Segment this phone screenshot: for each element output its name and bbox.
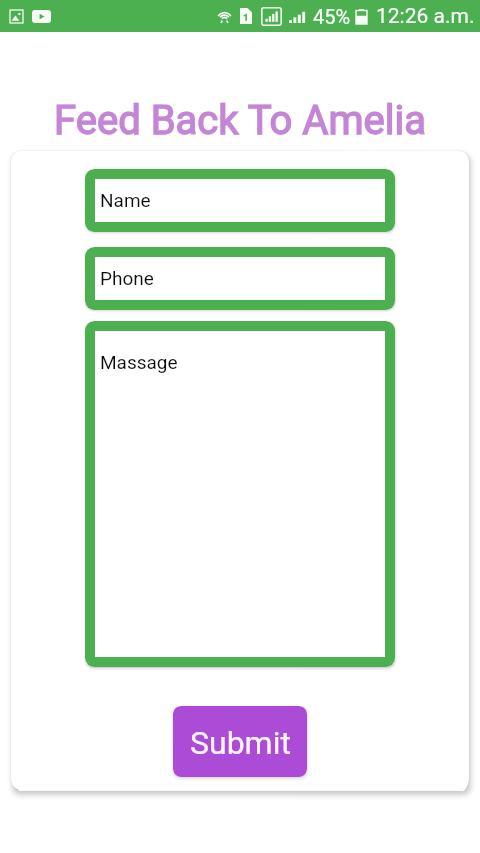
other: YouTube bbox=[32, 10, 51, 23]
other: Mobile signal bbox=[289, 9, 306, 23]
staticText: 45% bbox=[313, 5, 351, 28]
other: Mobile data bbox=[261, 7, 282, 26]
staticText: 12:26 a.m. bbox=[376, 4, 475, 29]
staticText: Massage bbox=[100, 351, 178, 373]
button[interactable]: Massage bbox=[95, 331, 385, 657]
staticText: Phone bbox=[100, 267, 154, 289]
staticText: Name bbox=[100, 189, 151, 211]
button[interactable]: Submit bbox=[173, 706, 307, 777]
other: SIM 1 bbox=[240, 8, 252, 24]
staticText: Submit bbox=[190, 724, 291, 762]
other: Screenshot captured bbox=[10, 10, 23, 23]
button[interactable]: Name bbox=[95, 179, 385, 222]
other: Battery 45 percent bbox=[356, 9, 367, 24]
other: Wi-Fi bbox=[217, 8, 232, 24]
staticText: Feed Back To Amelia bbox=[0, 97, 480, 144]
button[interactable]: Phone bbox=[95, 257, 385, 300]
